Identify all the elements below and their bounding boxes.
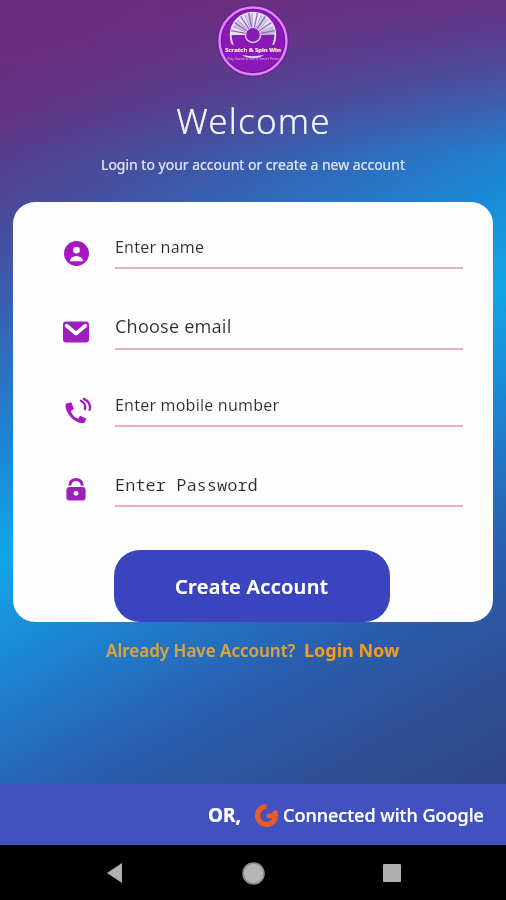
staticText: Already Have Account?	[106, 639, 296, 662]
staticText: Connected with Google	[283, 803, 484, 828]
button[interactable]: Recent apps	[368, 849, 416, 897]
button[interactable]: Create Account	[114, 550, 390, 622]
staticText: Scratch & Spin Win	[225, 46, 281, 54]
other: Name	[64, 241, 89, 266]
button[interactable]: Email	[13, 301, 493, 362]
staticText: Enter name	[115, 236, 205, 258]
staticText: Login Now	[304, 638, 400, 663]
button[interactable]: Mobile number	[13, 380, 493, 441]
button[interactable]: Name	[13, 222, 493, 283]
staticText: Enter mobile number	[115, 394, 280, 416]
other: Mobile number	[63, 398, 89, 424]
staticText: Login to your account or create a new ac…	[101, 155, 405, 174]
staticText: Choose email	[115, 314, 232, 339]
button[interactable]: Scratch and Spin Win logo	[217, 5, 289, 77]
other: Password	[64, 478, 88, 502]
button[interactable]: Already Have Account?	[100, 634, 406, 667]
button[interactable]: Home	[229, 849, 277, 897]
staticText: Play Game & Win a Smart Prizes	[227, 56, 280, 61]
button[interactable]: OR,	[0, 784, 506, 845]
staticText: Enter Password	[115, 473, 258, 496]
staticText: Create Account	[175, 573, 329, 600]
staticText: Welcome	[176, 97, 331, 145]
button[interactable]: Back	[91, 849, 139, 897]
button[interactable]: Password	[13, 459, 493, 520]
staticText: OR,	[208, 802, 241, 828]
other: Email	[63, 319, 89, 345]
